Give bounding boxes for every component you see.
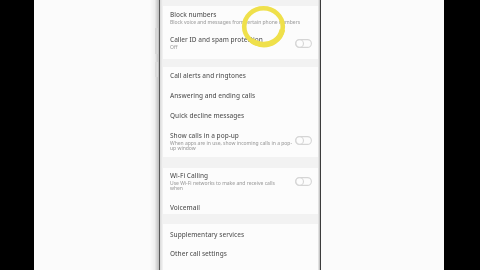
staticText: Wi-Fi Calling [170, 171, 209, 180]
button[interactable]: Answering and ending calls [163, 87, 318, 107]
staticText: Answering and ending calls [170, 91, 256, 100]
button[interactable]: Toggle Show calls in a pop-up [295, 136, 312, 145]
button[interactable]: Block numbers [163, 6, 318, 31]
button[interactable]: Quick decline messages [163, 107, 318, 127]
button[interactable]: Other call settings [163, 243, 318, 263]
button[interactable]: Call alerts and ringtones [163, 67, 318, 87]
button[interactable]: Wi-Fi Calling [163, 167, 318, 198]
staticText: up window [170, 145, 196, 152]
staticText: Off [170, 44, 178, 51]
staticText: Supplementary services [170, 230, 245, 239]
staticText: Voicemail [170, 203, 200, 212]
button[interactable]: Toggle Caller ID and spam protection [295, 39, 312, 48]
staticText: Caller ID and spam protection [170, 35, 263, 44]
staticText: Quick decline messages [170, 111, 245, 120]
staticText: Block numbers [170, 10, 217, 19]
staticText: Other call settings [170, 249, 227, 258]
staticText: Block voice and messages from certain ph… [170, 19, 301, 26]
staticText: Use Wi-Fi networks to make and receive c… [170, 180, 275, 187]
staticText: Call alerts and ringtones [170, 71, 246, 80]
staticText: When apps are in use, show incoming call… [170, 140, 293, 147]
staticText: when [170, 185, 183, 192]
button[interactable]: Toggle Wi-Fi Calling [295, 177, 312, 186]
button[interactable]: Show calls in a pop-up [163, 127, 318, 158]
button[interactable]: Voicemail [163, 199, 318, 214]
button[interactable]: Caller ID and spam protection [163, 31, 318, 59]
staticText: Show calls in a pop-up [170, 131, 239, 140]
button[interactable]: Supplementary services [163, 223, 318, 243]
